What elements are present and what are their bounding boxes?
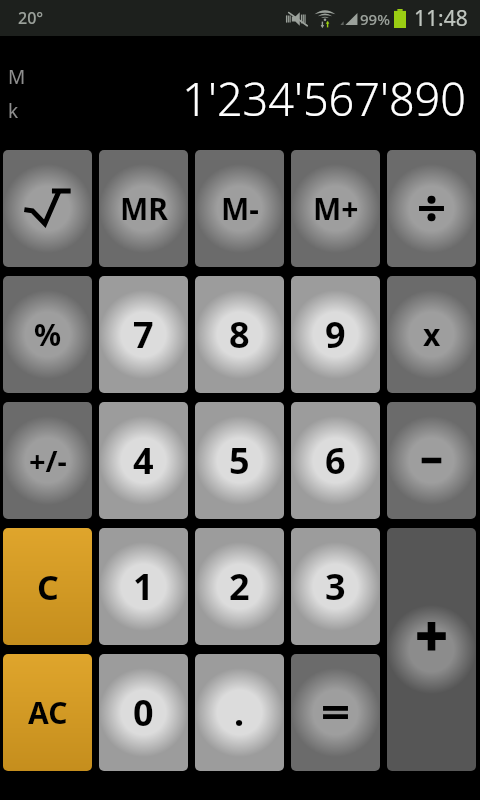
staticText: 20° bbox=[18, 7, 44, 29]
button[interactable]: +/- bbox=[3, 402, 92, 519]
staticText: 11:48 bbox=[414, 4, 468, 33]
staticText: 4 bbox=[133, 436, 154, 485]
staticText: M bbox=[8, 64, 26, 90]
button[interactable]: Equals bbox=[291, 654, 380, 771]
button[interactable]: x bbox=[387, 276, 476, 393]
staticText: +/- bbox=[29, 441, 67, 480]
button[interactable]: % bbox=[3, 276, 92, 393]
button[interactable]: 5 bbox=[195, 402, 284, 519]
button[interactable]: M+ bbox=[291, 150, 380, 267]
staticText: x bbox=[423, 314, 441, 355]
staticText: . bbox=[234, 688, 245, 737]
button[interactable]: Divide bbox=[387, 150, 476, 267]
button[interactable]: M- bbox=[195, 150, 284, 267]
staticText: 2 bbox=[229, 562, 250, 611]
button[interactable]: C bbox=[3, 528, 92, 645]
button[interactable]: 2 bbox=[195, 528, 284, 645]
button[interactable]: 6 bbox=[291, 402, 380, 519]
button[interactable]: 3 bbox=[291, 528, 380, 645]
staticText: 5 bbox=[229, 436, 250, 485]
staticText: AC bbox=[28, 692, 68, 733]
staticText: 99% bbox=[360, 9, 390, 29]
staticText: % bbox=[34, 314, 62, 355]
button[interactable]: . bbox=[195, 654, 284, 771]
staticText: M+ bbox=[313, 188, 359, 229]
staticText: k bbox=[8, 98, 19, 124]
staticText: 1'234'567'890 bbox=[182, 68, 466, 129]
staticText: 8 bbox=[229, 310, 250, 359]
button[interactable]: 1 bbox=[99, 528, 188, 645]
button[interactable]: Minus bbox=[387, 402, 476, 519]
button[interactable]: 4 bbox=[99, 402, 188, 519]
staticText: 0 bbox=[133, 688, 154, 737]
staticText: 1 bbox=[133, 562, 154, 611]
button[interactable]: 7 bbox=[99, 276, 188, 393]
button[interactable]: 0 bbox=[99, 654, 188, 771]
button[interactable]: AC bbox=[3, 654, 92, 771]
staticText: C bbox=[37, 564, 59, 610]
button[interactable]: 8 bbox=[195, 276, 284, 393]
staticText: 9 bbox=[325, 310, 346, 359]
button[interactable]: MR bbox=[99, 150, 188, 267]
button[interactable]: Plus bbox=[387, 528, 476, 771]
button[interactable]: 9 bbox=[291, 276, 380, 393]
staticText: M- bbox=[221, 188, 259, 229]
button[interactable]: Square root bbox=[3, 150, 92, 267]
staticText: 3 bbox=[325, 562, 346, 611]
staticText: 6 bbox=[325, 436, 346, 485]
staticText: MR bbox=[120, 188, 168, 229]
staticText: 7 bbox=[133, 310, 154, 359]
